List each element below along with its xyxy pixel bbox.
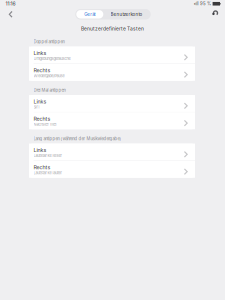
button[interactable]: Links [29, 47, 195, 63]
button[interactable]: Rechts [29, 64, 195, 81]
staticText: Nächster Titel [33, 122, 56, 127]
staticText: Wiedergabe/Pause [33, 73, 64, 78]
staticText: 95 % [200, 1, 211, 6]
staticText: Lautstärke leiser [33, 153, 61, 158]
staticText: Umgebungsgeräusche [33, 56, 70, 61]
staticText: Benutzerkonto [110, 12, 142, 17]
staticText: Links [33, 98, 46, 105]
button[interactable]: Links [29, 95, 195, 112]
staticText: Rechts [33, 116, 50, 122]
button[interactable]: Benutzerkonto [103, 10, 150, 18]
staticText: Lang antippen (während der Musikwiederga… [33, 136, 121, 141]
staticText: 11:16 [5, 1, 15, 7]
staticText: •ıll [193, 1, 198, 6]
staticText: Links [33, 50, 46, 56]
staticText: Rechts [33, 67, 50, 74]
staticText: Gerät [84, 12, 95, 17]
button[interactable]: Gerät [76, 10, 103, 18]
button[interactable]: Links [29, 144, 195, 160]
staticText: Doppel antippen [33, 39, 64, 44]
button[interactable]: Support [207, 8, 225, 20]
staticText: Lautstärke lauter [33, 170, 61, 175]
staticText: Siri [33, 105, 39, 109]
button[interactable]: Back [0, 8, 18, 20]
staticText: Rechts [33, 164, 50, 171]
staticText: Benutzerdefinierte Tasten [81, 26, 144, 32]
button[interactable]: Rechts [29, 161, 195, 178]
button[interactable]: Rechts [29, 112, 195, 129]
staticText: Drei Mal antippen [33, 88, 65, 93]
staticText: Links [33, 147, 46, 153]
